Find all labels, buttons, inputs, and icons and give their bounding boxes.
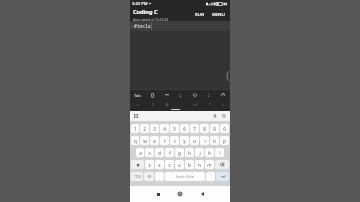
staticText: j	[199, 150, 201, 156]
button[interactable]: Emoji	[144, 172, 154, 181]
button[interactable]: ?123	[131, 172, 143, 181]
button[interactable]: RUN	[193, 7, 207, 21]
button[interactable]: i	[200, 136, 209, 145]
button[interactable]: Back	[198, 190, 206, 198]
staticText: .	[210, 175, 211, 180]
button[interactable]: b	[185, 160, 194, 169]
button[interactable]: z	[145, 160, 154, 169]
button[interactable]: +	[216, 100, 230, 109]
button[interactable]: <>	[188, 100, 202, 109]
button[interactable]	[160, 90, 174, 100]
button[interactable]: Tab	[130, 90, 145, 100]
staticText: g	[178, 150, 181, 156]
button[interactable]: Keyboard options	[133, 113, 139, 119]
button[interactable]: j	[195, 148, 204, 157]
button[interactable]: y	[180, 136, 189, 145]
button[interactable]: 8	[200, 124, 209, 133]
staticText: 6	[183, 126, 186, 132]
button[interactable]	[188, 90, 202, 100]
button[interactable]: k	[205, 148, 214, 157]
button[interactable]: Enter	[216, 172, 229, 181]
button[interactable]: Voice input	[212, 113, 218, 119]
staticText: =	[137, 102, 139, 107]
button[interactable]: =	[130, 100, 145, 109]
staticText: q	[134, 138, 137, 144]
staticText: c	[168, 162, 171, 168]
staticText: 7	[193, 126, 196, 132]
staticText: y	[183, 138, 186, 144]
staticText: ,	[181, 102, 182, 107]
button[interactable]: English (India)	[165, 172, 205, 181]
staticText: 8	[203, 126, 206, 132]
button[interactable]	[216, 90, 230, 100]
staticText: \	[152, 102, 154, 107]
staticText: a	[139, 150, 142, 156]
staticText: k	[208, 150, 211, 156]
staticText: !	[209, 102, 210, 107]
button[interactable]: ;	[174, 90, 188, 100]
button[interactable]: Shift	[131, 160, 144, 169]
staticText: e	[153, 138, 156, 144]
button[interactable]: q	[131, 136, 139, 145]
staticText: &	[166, 102, 169, 107]
button[interactable]: {}	[145, 90, 160, 100]
staticText: 9	[213, 126, 216, 132]
button[interactable]: Home	[176, 190, 184, 198]
staticText: 1	[131, 24, 133, 28]
button[interactable]: p	[220, 136, 229, 145]
staticText: 2	[143, 126, 146, 132]
button[interactable]: a	[136, 148, 144, 157]
staticText: Tab	[134, 93, 141, 98]
button[interactable]: 6	[180, 124, 189, 133]
button[interactable]: m	[205, 160, 214, 169]
button[interactable]: e	[150, 136, 159, 145]
button[interactable]: n	[195, 160, 204, 169]
button[interactable]: o	[210, 136, 219, 145]
button[interactable]: h	[185, 148, 194, 157]
button[interactable]: !	[202, 100, 216, 109]
button[interactable]: l	[215, 148, 224, 157]
button[interactable]: t	[170, 136, 179, 145]
button[interactable]: c	[165, 160, 174, 169]
button[interactable]: r	[160, 136, 169, 145]
button[interactable]: \	[145, 100, 160, 109]
button[interactable]: d	[155, 148, 164, 157]
button[interactable]: MENU	[210, 7, 227, 21]
staticText: 3:23 PM	[132, 1, 148, 7]
button[interactable]: °	[206, 172, 215, 181]
staticText: z	[148, 162, 151, 168]
button[interactable]: 1	[131, 124, 139, 133]
button[interactable]: g	[175, 148, 184, 157]
button[interactable]: 9	[210, 124, 219, 133]
button[interactable]: x	[155, 160, 164, 169]
staticText: ⋮	[158, 173, 161, 176]
staticText: {}	[151, 92, 155, 98]
button[interactable]: 2	[140, 124, 149, 133]
button[interactable]: 5	[170, 124, 179, 133]
button[interactable]: s	[145, 148, 154, 157]
button[interactable]: f	[165, 148, 174, 157]
button[interactable]: 1	[130, 21, 230, 31]
staticText: ,	[159, 175, 160, 180]
button[interactable]: u	[190, 136, 199, 145]
staticText: u	[193, 138, 196, 144]
staticText: Auto saved at 15:23:38	[133, 17, 169, 21]
button[interactable]: 0	[220, 124, 229, 133]
button[interactable]: Backspace	[215, 160, 229, 169]
button[interactable]: ⋮	[155, 172, 164, 181]
button[interactable]: &	[160, 100, 174, 109]
button[interactable]: Search	[221, 113, 227, 119]
button[interactable]: 7	[190, 124, 199, 133]
staticText: +	[222, 102, 224, 107]
staticText: #inclu	[134, 23, 151, 29]
button[interactable]: 3	[150, 124, 159, 133]
button[interactable]: Recents	[154, 190, 162, 198]
button[interactable]: 4	[160, 124, 169, 133]
staticText: l	[219, 150, 221, 156]
button[interactable]: :	[202, 90, 216, 100]
staticText: :	[208, 92, 210, 98]
staticText: t	[174, 138, 176, 144]
button[interactable]: v	[175, 160, 184, 169]
button[interactable]: w	[140, 136, 149, 145]
